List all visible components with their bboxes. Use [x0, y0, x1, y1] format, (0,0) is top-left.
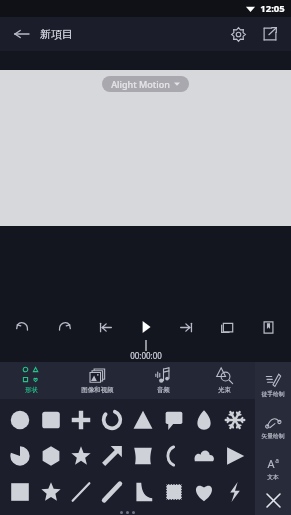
- button[interactable]: Shape 14: [189, 441, 219, 471]
- button[interactable]: Shape 6: [189, 405, 219, 435]
- staticText: a: [275, 456, 279, 465]
- button[interactable]: Shape 17: [36, 477, 66, 507]
- button[interactable]: Shape 8: [5, 441, 35, 471]
- button[interactable]: Bookmark: [255, 314, 281, 340]
- button[interactable]: Shape 1: [36, 405, 66, 435]
- button[interactable]: Alight Motion: [102, 76, 189, 92]
- button[interactable]: 图像和视频: [62, 362, 133, 399]
- button[interactable]: Settings: [225, 21, 251, 47]
- button[interactable]: Shape 7: [220, 405, 250, 435]
- staticText: 00:00:00: [130, 350, 162, 361]
- button[interactable]: Loop: [214, 314, 240, 340]
- staticText: 矢量绘制: [261, 432, 285, 439]
- staticText: Alight Motion: [111, 78, 170, 90]
- staticText: 音频: [157, 386, 170, 394]
- staticText: 新項目: [40, 27, 73, 41]
- button[interactable]: Shape 4: [128, 405, 158, 435]
- button[interactable]: Shape 9: [36, 441, 66, 471]
- staticText: 12:05: [260, 2, 285, 15]
- button[interactable]: Shape 15: [220, 441, 250, 471]
- button[interactable]: Skip to end: [173, 314, 199, 340]
- button[interactable]: Back: [8, 21, 34, 47]
- button[interactable]: 矢量绘制: [255, 408, 291, 444]
- button[interactable]: Shape 5: [159, 405, 189, 435]
- button[interactable]: Shape 3: [97, 405, 127, 435]
- button[interactable]: Shape 10: [66, 441, 96, 471]
- button[interactable]: Redo: [51, 314, 77, 340]
- button[interactable]: Skip to start: [92, 314, 118, 340]
- button[interactable]: 音频: [133, 362, 194, 399]
- button[interactable]: Undo: [10, 314, 36, 340]
- staticText: 光束: [218, 386, 231, 394]
- button[interactable]: Shape 20: [128, 477, 158, 507]
- button[interactable]: Shape 11: [97, 441, 127, 471]
- staticText: 图像和视频: [81, 386, 114, 394]
- button[interactable]: A: [255, 450, 291, 486]
- button[interactable]: Close: [258, 486, 288, 515]
- staticText: 文本: [267, 473, 279, 480]
- button[interactable]: Shape 12: [128, 441, 158, 471]
- button[interactable]: Shape 21: [159, 477, 189, 507]
- button[interactable]: Shape 18: [66, 477, 96, 507]
- button[interactable]: Shape 16: [5, 477, 35, 507]
- button[interactable]: 形状: [0, 362, 62, 399]
- button[interactable]: Shape 0: [5, 405, 35, 435]
- button[interactable]: 徒手绘制: [255, 366, 291, 402]
- button[interactable]: 光束: [194, 362, 255, 399]
- button[interactable]: Shape 23: [220, 477, 250, 507]
- button[interactable]: Shape 19: [97, 477, 127, 507]
- button[interactable]: Shape 2: [66, 405, 96, 435]
- button[interactable]: Shape 13: [159, 441, 189, 471]
- staticText: 形状: [25, 386, 38, 394]
- button[interactable]: Play: [133, 314, 159, 340]
- button[interactable]: Shape 22: [189, 477, 219, 507]
- button[interactable]: Export: [257, 21, 283, 47]
- staticText: 徒手绘制: [261, 390, 285, 397]
- staticText: A: [267, 456, 275, 471]
